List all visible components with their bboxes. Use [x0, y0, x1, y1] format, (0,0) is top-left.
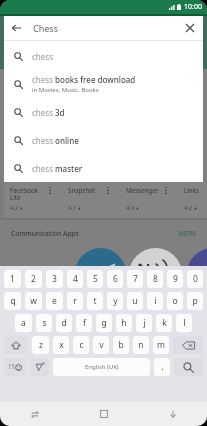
button[interactable]: 8 [147, 270, 163, 288]
staticText: Communication Apps [11, 229, 79, 238]
staticText: m [157, 339, 165, 351]
staticText: g [101, 317, 107, 329]
button[interactable]: !1 [4, 358, 26, 376]
button[interactable]: 0 [187, 270, 203, 288]
staticText: y [113, 295, 118, 307]
button[interactable]: Backspace [173, 336, 203, 354]
button[interactable]: Hide keyboard [138, 402, 207, 426]
staticText: chess online [32, 135, 79, 146]
button[interactable]: o [167, 292, 183, 310]
staticText: 4.1 [68, 204, 77, 212]
staticText: chess books free download [32, 74, 136, 85]
staticText: 4.2 [184, 204, 193, 212]
button[interactable]: chess master [4, 154, 203, 182]
staticText: chess master [32, 163, 83, 174]
button[interactable]: . [154, 358, 170, 376]
staticText: 1 [10, 273, 15, 285]
staticText: Chess [33, 22, 58, 34]
button[interactable]: c [73, 336, 89, 354]
staticText: u [132, 295, 138, 307]
staticText: MORE [178, 229, 197, 238]
staticText: h [121, 317, 127, 329]
button[interactable]: y [107, 292, 123, 310]
staticText: 3 [52, 273, 57, 285]
button[interactable]: w [25, 292, 42, 310]
button[interactable]: f [76, 314, 92, 332]
button[interactable]: v [93, 336, 109, 354]
button[interactable]: chess online [4, 126, 203, 154]
button[interactable]: n [133, 336, 149, 354]
button[interactable]: q [4, 292, 21, 310]
button[interactable]: g [96, 314, 112, 332]
button[interactable]: chess books free download [4, 70, 203, 98]
button[interactable]: b [113, 336, 129, 354]
staticText: e [52, 295, 57, 307]
button[interactable]: 7 [127, 270, 143, 288]
staticText: 10:00 [184, 2, 202, 12]
staticText: !1 [9, 362, 15, 372]
staticText: 9 [173, 273, 178, 285]
staticText: x [59, 339, 64, 351]
staticText: c [79, 339, 84, 351]
button[interactable]: Handwriting [30, 358, 49, 376]
button[interactable]: s [36, 314, 52, 332]
button[interactable]: d [56, 314, 72, 332]
staticText: v [99, 339, 104, 351]
staticText: 4 [73, 273, 78, 285]
staticText: 8 [153, 273, 158, 285]
button[interactable]: j [136, 314, 152, 332]
staticText: n [138, 339, 144, 351]
staticText: o [172, 295, 178, 307]
button[interactable]: m [153, 336, 169, 354]
button[interactable]: 4 [67, 270, 83, 288]
staticText: z [39, 339, 43, 351]
staticText: d [61, 317, 67, 329]
button[interactable]: Shift [4, 336, 28, 354]
staticText: 2 [31, 273, 36, 285]
button[interactable]: 5 [87, 270, 103, 288]
button[interactable]: i [147, 292, 163, 310]
button[interactable]: Recent apps [0, 402, 69, 426]
staticText: 4.4 [126, 204, 135, 212]
button[interactable]: e [46, 292, 63, 310]
button[interactable]: t [87, 292, 103, 310]
button[interactable]: Search [174, 358, 203, 376]
button[interactable]: x [53, 336, 69, 354]
staticText: s [42, 317, 47, 329]
staticText: a [21, 317, 26, 329]
button[interactable]: h [116, 314, 132, 332]
staticText: English (UK) [85, 363, 119, 371]
button[interactable]: r [67, 292, 83, 310]
button[interactable]: z [32, 336, 49, 354]
button[interactable]: chess [4, 42, 203, 70]
staticText: w [30, 295, 37, 307]
staticText: Links [184, 186, 199, 194]
staticText: i [154, 295, 157, 307]
staticText: in Movies, Music, Books [32, 86, 99, 94]
staticText: f [83, 317, 86, 329]
staticText: 0 [193, 273, 198, 285]
staticText: l [183, 317, 186, 329]
button[interactable]: Home [69, 402, 138, 426]
button[interactable]: Clear search [178, 16, 202, 40]
button[interactable]: Back [4, 16, 28, 40]
button[interactable]: u [127, 292, 143, 310]
button[interactable]: p [187, 292, 203, 310]
staticText: r [73, 295, 77, 307]
staticText: 6 [113, 273, 118, 285]
staticText: 4.2 [10, 204, 19, 212]
staticText: chess 3d [32, 107, 65, 118]
staticText: 5 [93, 273, 98, 285]
button[interactable]: chess 3d [4, 98, 203, 126]
button[interactable]: k [156, 314, 172, 332]
button[interactable]: 2 [25, 270, 42, 288]
button[interactable]: 1 [4, 270, 21, 288]
button[interactable]: English (UK) [53, 358, 150, 376]
button[interactable]: 3 [46, 270, 63, 288]
button[interactable]: a [15, 314, 32, 332]
staticText: Messenger [126, 186, 159, 194]
button[interactable]: l [176, 314, 192, 332]
button[interactable]: 9 [167, 270, 183, 288]
button[interactable]: 6 [107, 270, 123, 288]
staticText: chess [32, 51, 53, 62]
